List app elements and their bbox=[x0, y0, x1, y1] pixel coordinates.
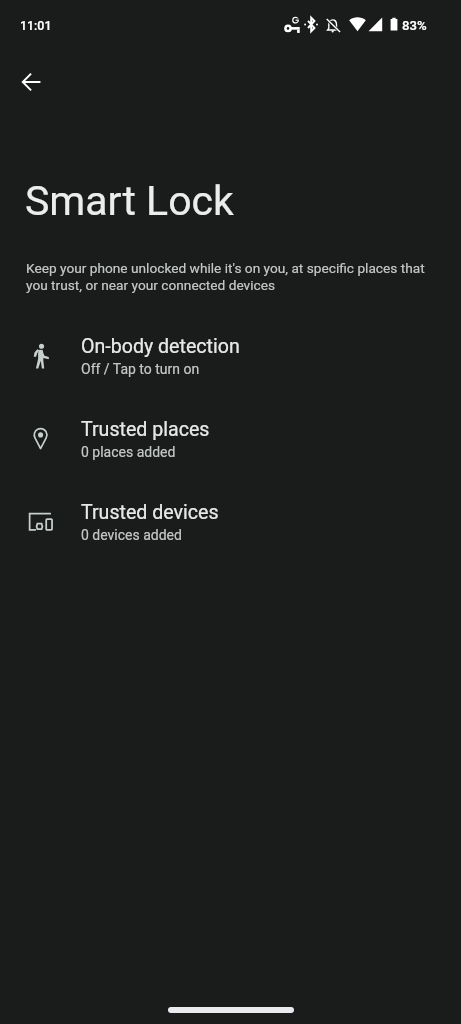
button[interactable]: Trusted places bbox=[0, 397, 461, 480]
staticText: On-body detection bbox=[81, 334, 240, 358]
button[interactable]: Back bbox=[8, 58, 56, 106]
staticText: 11:01 bbox=[20, 17, 52, 33]
staticText: 83% bbox=[402, 17, 427, 33]
staticText: Trusted devices bbox=[81, 500, 219, 524]
staticText: 0 devices added bbox=[81, 526, 182, 544]
staticText: Trusted places bbox=[81, 417, 210, 441]
staticText: Off / Tap to turn on bbox=[81, 360, 200, 378]
button[interactable]: On-body detection bbox=[0, 314, 461, 397]
staticText: 0 places added bbox=[81, 443, 176, 461]
button[interactable]: Trusted devices bbox=[0, 480, 461, 563]
staticText: Smart Lock bbox=[25, 177, 234, 225]
staticText: Keep your phone unlocked while it's on y… bbox=[26, 260, 435, 294]
